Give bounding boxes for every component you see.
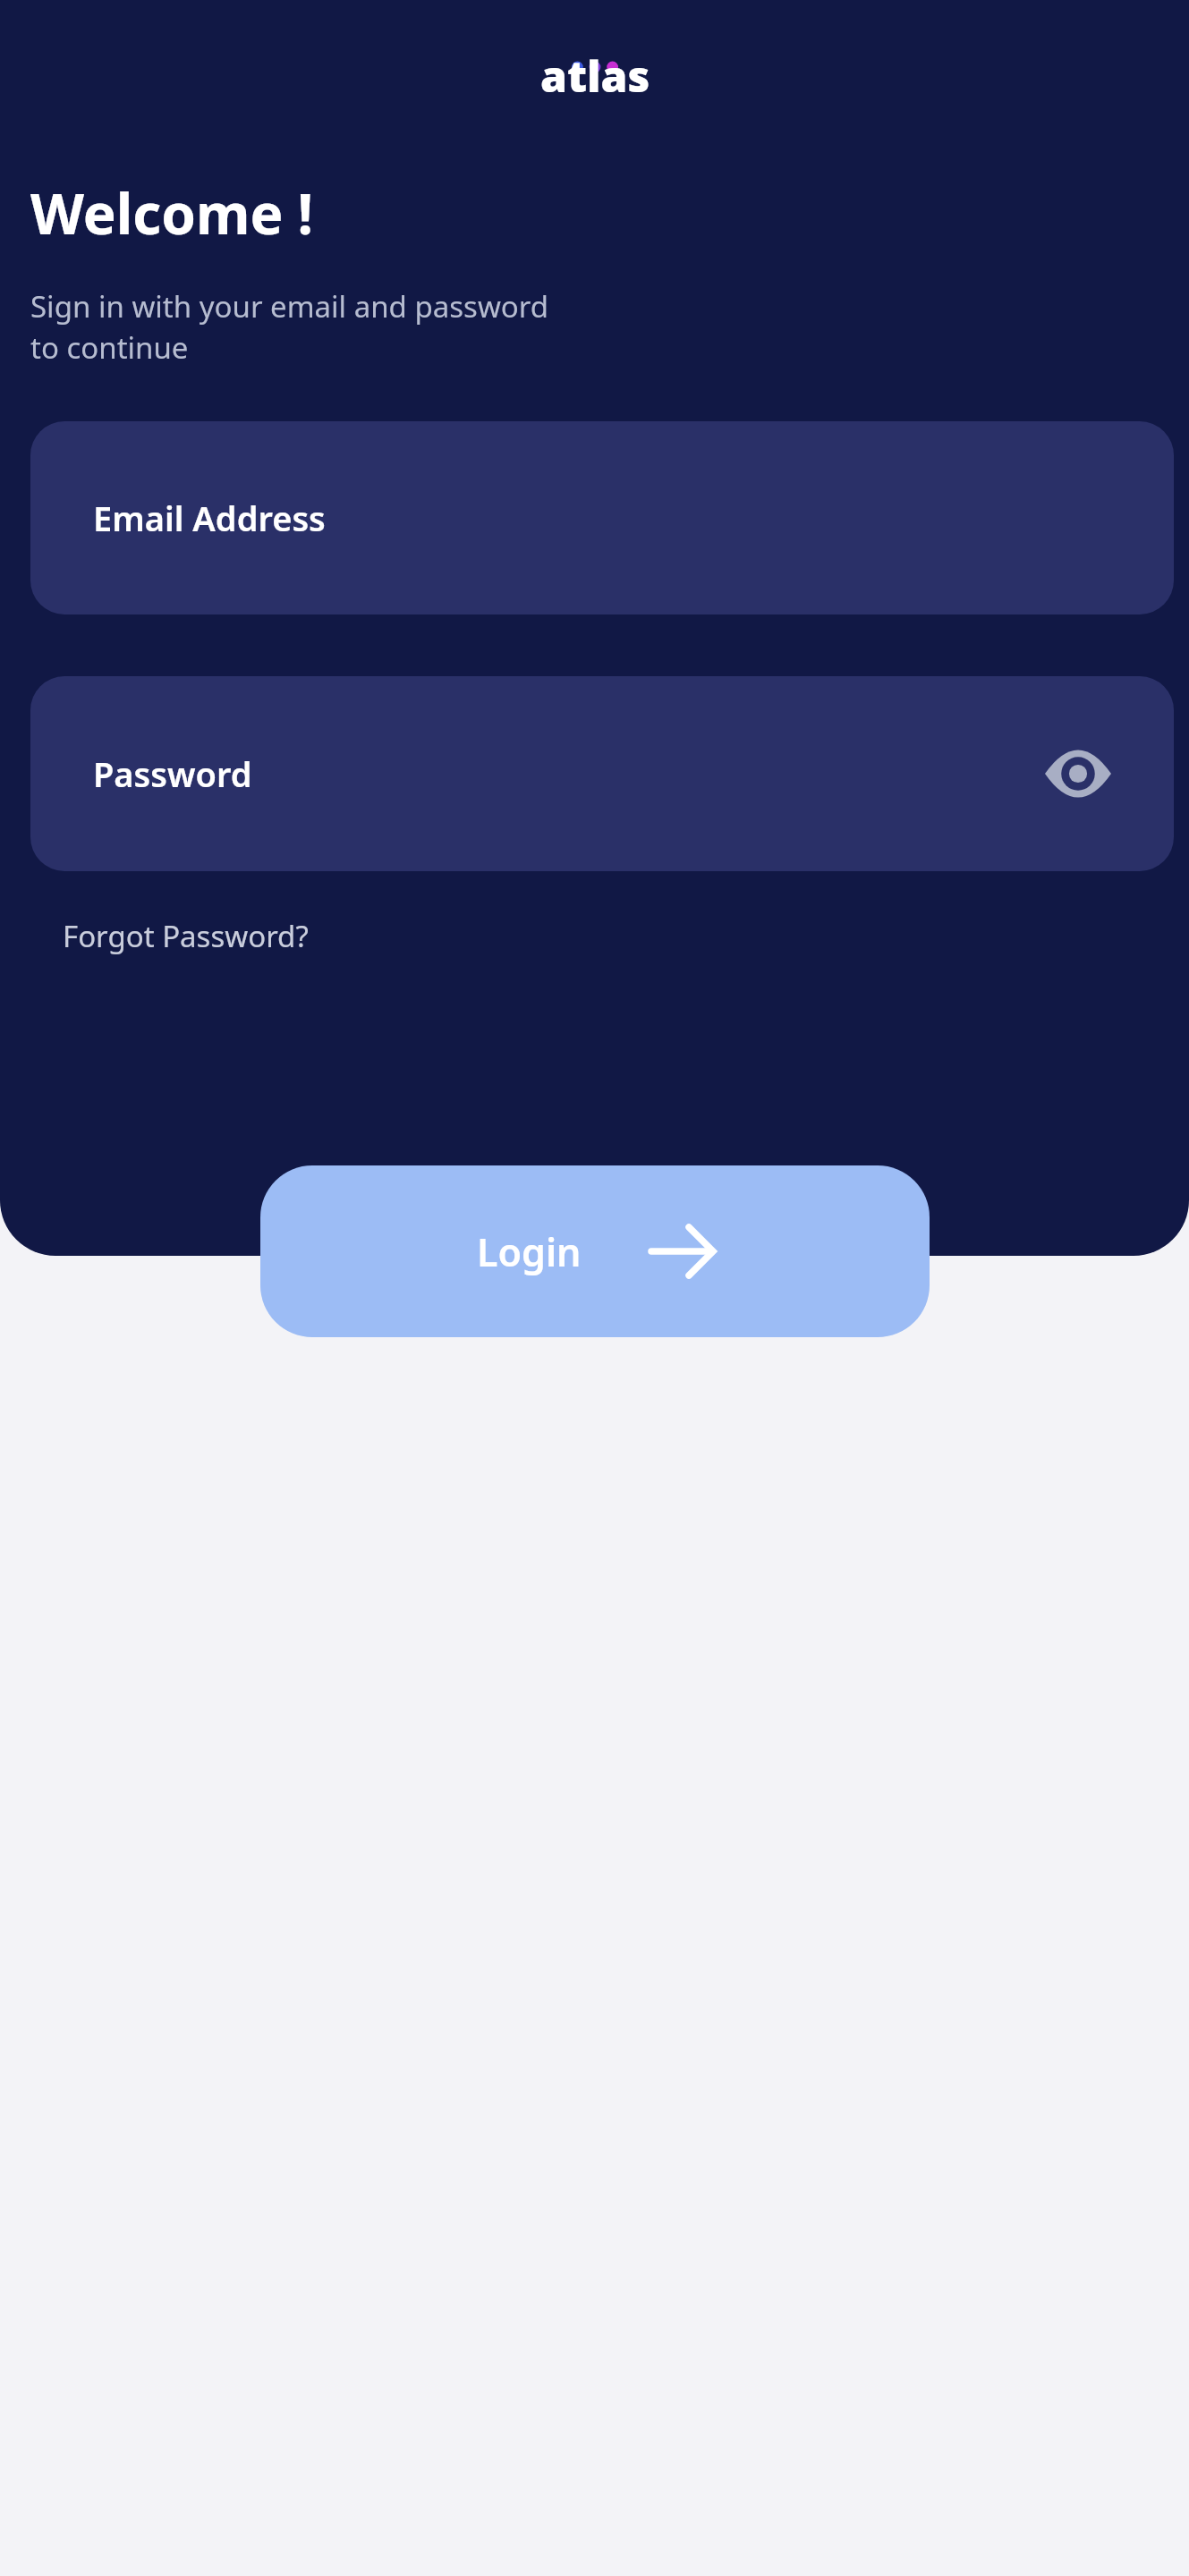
staticText: Sign in with your email and password to … (30, 286, 549, 368)
button[interactable]: atlas (461, 36, 729, 104)
button[interactable]: Login (260, 1165, 930, 1337)
button[interactable]: Password (30, 676, 1174, 871)
staticText: Login (477, 1225, 582, 1278)
staticText: Email Address (93, 495, 326, 541)
button[interactable]: Show password (1038, 733, 1118, 814)
button[interactable]: Email Address (30, 421, 1174, 614)
staticText: Welcome ! (30, 175, 314, 250)
button[interactable]: Forgot Password? (61, 909, 310, 963)
staticText: atlas (540, 47, 650, 105)
staticText: Forgot Password? (63, 916, 309, 956)
staticText: Password (93, 750, 252, 797)
